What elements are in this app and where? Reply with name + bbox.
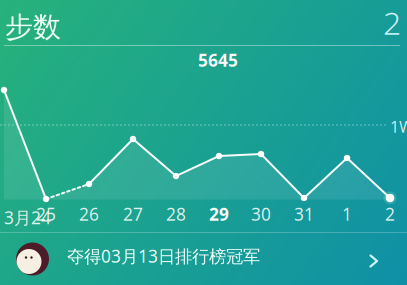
staticText: 27 [123,202,143,225]
staticText: 步数 [5,10,61,44]
staticText: 1W [390,116,407,137]
staticText: 25 [36,202,56,225]
staticText: 29 [209,202,229,225]
staticText: 1 [342,202,352,225]
staticText: 31 [294,202,314,225]
staticText: 2 [385,202,395,225]
staticText: 2 [383,1,401,43]
staticText: 26 [79,202,99,225]
staticText: 28 [166,202,186,225]
staticText: 5645 [198,48,238,71]
button[interactable]: 夺得03月13日排行榜冠军 [0,233,407,285]
staticText: 30 [251,202,271,225]
staticText: 夺得03月13日排行榜冠军 [67,244,260,267]
staticText: 3月24 [4,206,51,229]
